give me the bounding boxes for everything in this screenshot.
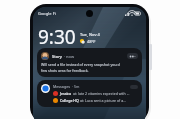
staticText: Tue, Nov 4 — [80, 32, 100, 37]
staticText: at: Luca sent a picture of a... — [80, 98, 126, 103]
staticText: few shots area for feedback. — [41, 68, 89, 73]
staticText: · 5m — [72, 84, 80, 89]
button[interactable]: Story — [37, 48, 142, 77]
button[interactable]: College HQ — [53, 98, 138, 103]
staticText: Will send a file instead of every snapsh… — [41, 62, 120, 67]
staticText: Messages — [53, 84, 70, 89]
staticText: 48°F — [87, 39, 96, 44]
staticText: 9:30 — [38, 24, 76, 50]
staticText: Google Fi — [38, 11, 56, 16]
staticText: College HQ — [60, 98, 79, 103]
button[interactable]: Expand messages — [130, 85, 138, 89]
button[interactable]: Expand notification — [127, 53, 138, 59]
button[interactable]: Messages — [37, 80, 142, 107]
staticText: at: late 2 vitamins expected with ... — [73, 91, 130, 96]
staticText: Story — [52, 54, 62, 59]
staticText: Jessica — [60, 91, 72, 96]
button[interactable]: Jessica — [53, 91, 138, 96]
staticText: · now — [64, 54, 75, 59]
